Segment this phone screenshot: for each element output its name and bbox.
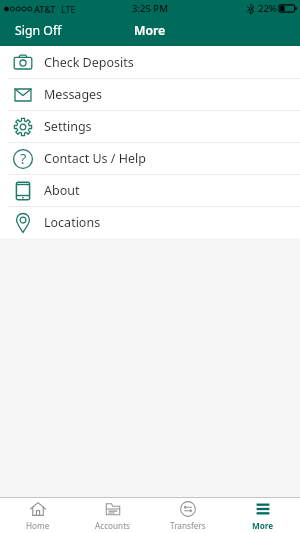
button[interactable]: Transfers <box>150 498 225 533</box>
button[interactable]: Messages <box>0 79 300 110</box>
staticText: Locations <box>44 214 101 231</box>
button[interactable]: More <box>225 498 300 533</box>
staticText: Messages <box>44 86 103 103</box>
staticText: LTE <box>61 3 76 15</box>
button[interactable]: Check Deposits <box>0 46 300 78</box>
button[interactable]: Locations <box>0 207 300 238</box>
staticText: Sign Off <box>15 22 62 39</box>
button[interactable]: Sign Off <box>0 19 74 44</box>
staticText: Accounts <box>95 520 131 531</box>
button[interactable]: About <box>0 175 300 206</box>
staticText: More <box>134 22 166 39</box>
staticText: 22% <box>258 2 277 15</box>
staticText: Settings <box>44 118 92 135</box>
button[interactable]: Settings <box>0 111 300 142</box>
staticText: More <box>252 520 274 531</box>
staticText: About <box>44 182 80 199</box>
staticText: AT&T <box>34 3 56 15</box>
staticText: Check Deposits <box>44 54 134 71</box>
staticText: Transfers <box>170 520 206 531</box>
staticText: Contact Us / Help <box>44 150 146 167</box>
staticText: 3:25 PM <box>132 2 168 15</box>
button[interactable]: Accounts <box>75 498 150 533</box>
staticText: ? <box>20 148 27 168</box>
button[interactable]: Home <box>0 498 75 533</box>
button[interactable]: ? <box>0 143 300 174</box>
staticText: Home <box>26 520 50 531</box>
